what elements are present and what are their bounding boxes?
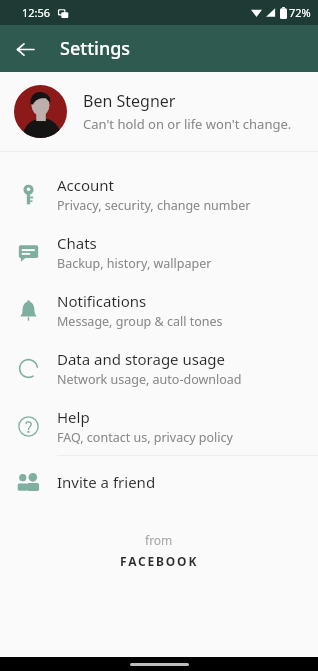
staticText: Backup, history, wallpaper [57, 255, 212, 272]
staticText: Invite a friend [57, 472, 156, 492]
staticText: Message, group & call tones [57, 313, 223, 330]
button[interactable]: Chats [0, 223, 318, 281]
staticText: FACEBOOK [120, 553, 199, 569]
staticText: Network usage, auto-download [57, 371, 242, 388]
staticText: Notifications [57, 291, 147, 311]
button[interactable]: Help [0, 397, 318, 455]
button[interactable]: Notifications [0, 281, 318, 339]
staticText: Ben Stegner [83, 90, 176, 112]
staticText: Chats [57, 233, 97, 253]
button[interactable]: Account [0, 165, 318, 223]
staticText: Account [57, 175, 115, 195]
staticText: 72% [289, 5, 311, 20]
staticText: Settings [60, 36, 131, 61]
button[interactable]: Ben Stegner [0, 72, 318, 151]
button[interactable]: Invite a friend [0, 456, 318, 508]
staticText: Data and storage usage [57, 349, 226, 369]
staticText: Can't hold on or life won't change. [83, 115, 292, 133]
button[interactable]: Data and storage usage [0, 339, 318, 397]
staticText: Help [57, 407, 90, 427]
staticText: from [145, 532, 173, 548]
button[interactable]: Back [6, 30, 44, 68]
staticText: Privacy, security, change number [57, 197, 251, 214]
staticText: 12:56 [22, 5, 51, 20]
staticText: FAQ, contact us, privacy policy [57, 429, 233, 446]
